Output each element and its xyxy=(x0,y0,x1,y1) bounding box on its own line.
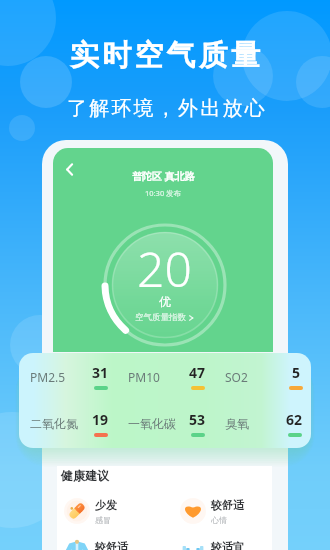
staticText: 10:30 发布 xyxy=(145,188,182,198)
staticText: 较舒适 xyxy=(211,498,244,512)
staticText: 20 xyxy=(137,236,192,301)
staticText: 了解环境，外出放心 xyxy=(67,96,267,121)
staticText: 感冒 xyxy=(95,515,111,524)
staticText: SO2 xyxy=(225,369,248,385)
button[interactable]: 较舒适 xyxy=(64,534,164,550)
button[interactable]: 较适宜 xyxy=(180,534,280,550)
staticText: 优 xyxy=(159,294,171,309)
staticText: 53 xyxy=(189,410,206,429)
staticText: 31 xyxy=(92,363,109,382)
staticText: 臭氧 xyxy=(225,416,249,431)
staticText: 19 xyxy=(92,410,109,429)
staticText: 实时空气质量 xyxy=(70,37,264,74)
staticText: 空气质量指数 xyxy=(135,312,186,323)
button[interactable]: Back xyxy=(55,155,83,183)
button[interactable]: 少发 xyxy=(64,498,164,524)
staticText: 少发 xyxy=(95,498,117,512)
staticText: PM10 xyxy=(128,369,160,385)
staticText: 一氧化碳 xyxy=(128,416,176,431)
staticText: 较舒适 xyxy=(95,540,128,550)
staticText: PM2.5 xyxy=(30,369,66,385)
staticText: 5 xyxy=(292,363,301,382)
staticText: 较适宜 xyxy=(211,540,244,550)
staticText: 普陀区 真北路 xyxy=(132,169,195,183)
staticText: 健康建议 xyxy=(61,468,109,483)
staticText: 62 xyxy=(286,410,303,429)
staticText: 二氧化氮 xyxy=(30,416,78,431)
button[interactable]: 较舒适 xyxy=(180,498,280,524)
staticText: 47 xyxy=(189,363,206,382)
staticText: 心情 xyxy=(211,515,227,524)
